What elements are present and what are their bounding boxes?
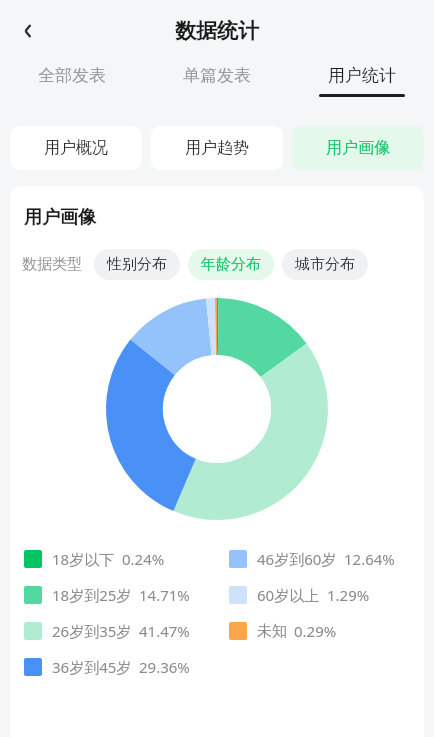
button[interactable]: 年龄分布 xyxy=(188,249,274,280)
staticText: 全部发表 xyxy=(38,65,106,86)
staticText: 单篇发表 xyxy=(183,65,251,86)
staticText: 12.64% xyxy=(344,549,395,569)
other: Age distribution donut chart xyxy=(106,298,328,520)
staticText: 1.29% xyxy=(327,585,370,605)
staticText: 46岁到60岁 xyxy=(257,549,337,569)
staticText: 41.47% xyxy=(139,621,190,641)
staticText: 36岁到45岁 xyxy=(52,657,132,677)
button[interactable]: 用户概况 xyxy=(10,126,142,170)
button[interactable]: 用户统计 xyxy=(289,62,434,116)
button[interactable]: 性别分布 xyxy=(94,249,180,280)
staticText: 18岁到25岁 xyxy=(52,585,132,605)
staticText: 城市分布 xyxy=(295,255,355,274)
staticText: 29.36% xyxy=(139,657,190,677)
staticText: 性别分布 xyxy=(107,255,167,274)
staticText: 60岁以上 xyxy=(257,585,320,605)
button[interactable]: 用户趋势 xyxy=(151,126,283,170)
staticText: 14.71% xyxy=(139,585,190,605)
staticText: 用户概况 xyxy=(44,138,108,158)
staticText: 用户画像 xyxy=(24,206,96,229)
button[interactable]: Back xyxy=(8,11,48,51)
staticText: 0.29% xyxy=(294,621,337,641)
button[interactable]: 单篇发表 xyxy=(144,62,289,116)
button[interactable]: 城市分布 xyxy=(282,249,368,280)
staticText: 年龄分布 xyxy=(201,255,261,274)
staticText: 数据统计 xyxy=(175,18,259,44)
button[interactable]: 用户画像 xyxy=(292,126,424,170)
button[interactable]: 全部发表 xyxy=(0,62,144,116)
staticText: 用户统计 xyxy=(328,65,396,86)
staticText: 未知 xyxy=(257,622,287,641)
staticText: 0.24% xyxy=(122,549,165,569)
staticText: 18岁以下 xyxy=(52,549,115,569)
staticText: 用户画像 xyxy=(326,138,390,158)
staticText: 数据类型 xyxy=(22,255,82,274)
staticText: 26岁到35岁 xyxy=(52,621,132,641)
staticText: 用户趋势 xyxy=(185,138,249,158)
